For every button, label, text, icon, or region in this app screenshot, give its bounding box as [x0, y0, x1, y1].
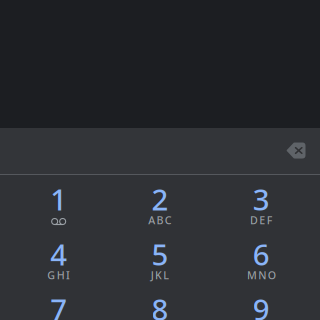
staticText: MNO	[247, 268, 276, 282]
button[interactable]: 9 WXYZ	[211, 285, 312, 320]
staticText: 2	[151, 179, 168, 218]
staticText: 1	[50, 179, 67, 218]
button[interactable]: 5 JKL	[109, 230, 211, 285]
button[interactable]: 7 PQRS	[8, 285, 109, 320]
button[interactable]: 2 ABC	[109, 175, 211, 230]
staticText: 5	[151, 234, 168, 273]
button[interactable]: 3 DEF	[211, 175, 312, 230]
staticText: 9	[253, 289, 270, 320]
staticText: 3	[253, 179, 270, 218]
staticText: GHI	[47, 268, 70, 282]
staticText: 8	[151, 289, 168, 320]
button[interactable]: 6 MNO	[211, 230, 312, 285]
button[interactable]: 4 GHI	[8, 230, 109, 285]
button[interactable]: 1 Voicemail	[8, 175, 109, 230]
staticText: 7	[50, 289, 67, 320]
staticText: DEF	[250, 213, 273, 227]
button[interactable]: Delete	[272, 127, 320, 174]
staticText: 6	[253, 234, 270, 273]
staticText: 4	[50, 234, 67, 273]
button[interactable]: 8 TUV	[109, 285, 211, 320]
staticText: ABC	[148, 213, 172, 227]
staticText: JKL	[151, 268, 169, 282]
